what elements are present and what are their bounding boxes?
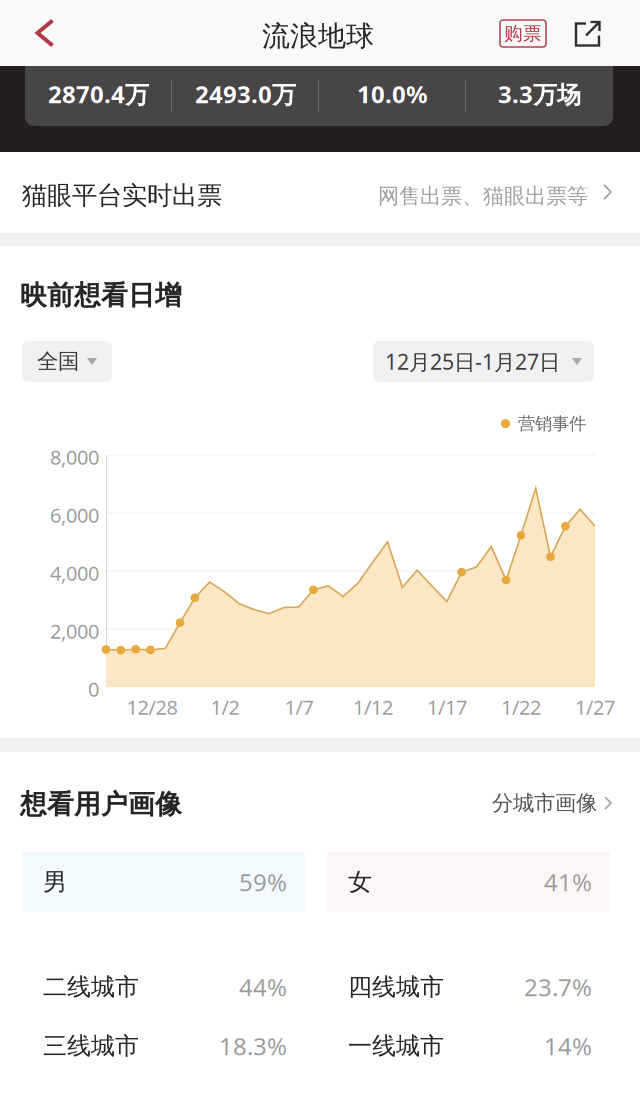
staticText: 10.0% — [357, 78, 428, 110]
staticText: 购票 — [504, 22, 542, 45]
staticText: 2,000 — [50, 618, 99, 644]
staticText: 女 — [348, 867, 372, 897]
button[interactable]: 分城市画像 — [492, 790, 613, 816]
staticText: 一线城市 — [348, 1031, 444, 1061]
staticText: 1/2 — [210, 694, 239, 720]
staticText: 二线城市 — [43, 972, 139, 1002]
button[interactable]: Back — [0, 0, 90, 66]
staticText: 1/17 — [427, 694, 467, 720]
staticText: 营销事件 — [518, 413, 586, 434]
staticText: 男 — [43, 867, 67, 897]
staticText: 0 — [88, 676, 99, 702]
staticText: 4,000 — [50, 560, 99, 586]
staticText: 6,000 — [50, 502, 99, 528]
staticText: 41% — [544, 866, 592, 898]
staticText: 猫眼平台实时出票 — [22, 180, 222, 211]
staticText: 1/7 — [284, 694, 313, 720]
staticText: 59% — [239, 866, 287, 898]
staticText: 1/22 — [501, 694, 541, 720]
staticText: 2870.4万 — [48, 78, 149, 110]
staticText: 映前想看日增 — [20, 279, 182, 312]
button[interactable]: 购票 — [500, 20, 546, 47]
staticText: 8,000 — [50, 444, 99, 470]
staticText: 1/27 — [575, 694, 615, 720]
staticText: 3.3万场 — [498, 78, 581, 110]
staticText: 12月25日-1月27日 — [385, 347, 560, 376]
staticText: 44% — [239, 971, 287, 1003]
button[interactable]: Share — [562, 8, 614, 60]
button[interactable]: 猫眼平台实时出票 — [0, 152, 640, 233]
staticText: 分城市画像 — [492, 790, 597, 816]
staticText: 14% — [544, 1030, 592, 1062]
staticText: 23.7% — [524, 971, 592, 1003]
staticText: 四线城市 — [348, 972, 444, 1002]
staticText: 流浪地球 — [262, 19, 374, 53]
staticText: 网售出票、猫眼出票等 — [378, 183, 588, 209]
staticText: 12/28 — [126, 694, 177, 720]
button[interactable]: 12月25日-1月27日 — [373, 341, 594, 382]
staticText: 2493.0万 — [195, 78, 296, 110]
staticText: 三线城市 — [43, 1031, 139, 1061]
staticText: 全国 — [37, 348, 79, 375]
staticText: 想看用户画像 — [20, 788, 182, 821]
staticText: 18.3% — [219, 1030, 287, 1062]
staticText: 1/12 — [353, 694, 393, 720]
button[interactable]: 全国 — [22, 341, 112, 382]
